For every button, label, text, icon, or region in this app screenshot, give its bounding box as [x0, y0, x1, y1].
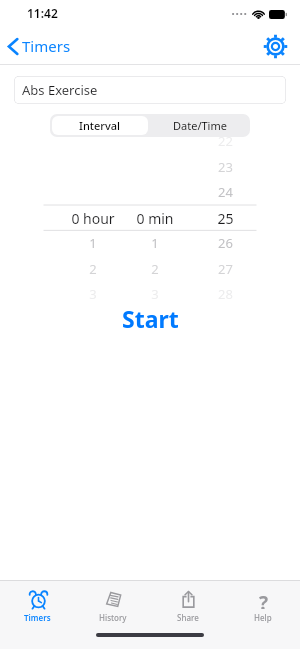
button[interactable]: Picker 0 hour	[0, 153, 300, 283]
staticText: History	[99, 612, 127, 623]
staticText: 25	[217, 209, 234, 227]
staticText: 24	[218, 183, 233, 201]
button[interactable]: Picker 25	[0, 153, 300, 283]
staticText: 0 hour	[71, 209, 115, 227]
button[interactable]: Interval	[52, 116, 148, 135]
staticText: Date/Time	[173, 118, 227, 133]
staticText: Abs Exercise	[22, 81, 98, 99]
button[interactable]: ?	[225, 581, 300, 629]
button[interactable]: History	[75, 581, 150, 629]
staticText: 1	[151, 234, 159, 252]
staticText: 11:42	[27, 5, 58, 21]
button[interactable]: Start	[102, 297, 199, 340]
button[interactable]: Abs Exercise	[14, 76, 286, 104]
button[interactable]: Date/Time	[150, 114, 250, 137]
staticText: 3	[151, 285, 159, 303]
staticText: ?	[259, 590, 269, 609]
staticText: 2	[151, 260, 159, 278]
staticText: 1	[89, 234, 97, 252]
staticText: Timers	[24, 612, 51, 623]
staticText: 3	[89, 285, 97, 303]
staticText: 28	[218, 285, 233, 303]
staticText: Start	[122, 303, 179, 334]
staticText: 0 min	[136, 209, 174, 227]
button[interactable]: Timers	[0, 581, 75, 629]
button[interactable]: Settings	[258, 29, 292, 63]
staticText: 26	[218, 234, 233, 252]
staticText: 2	[89, 260, 97, 278]
staticText: 27	[218, 260, 233, 278]
button[interactable]: Picker 0 min	[0, 153, 300, 283]
staticText: 23	[218, 158, 233, 176]
button[interactable]: Share	[150, 581, 225, 629]
staticText: Timers	[22, 36, 71, 56]
button[interactable]: Timers	[0, 32, 81, 60]
staticText: Interval	[79, 118, 121, 133]
staticText: 22	[218, 132, 233, 150]
staticText: Help	[254, 612, 272, 623]
staticText: Share	[177, 612, 199, 623]
